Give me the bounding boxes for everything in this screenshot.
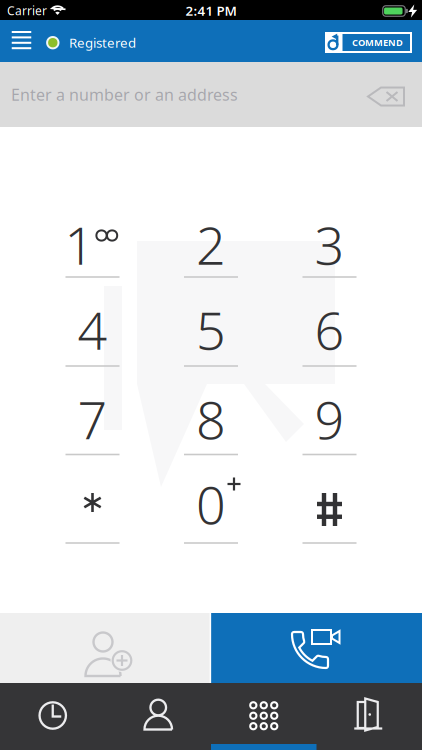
button[interactable]: 3 — [277, 202, 381, 286]
button[interactable]: 6 — [277, 287, 381, 371]
button[interactable]: Menu — [9, 27, 33, 55]
button[interactable]: Enter a number or an address — [0, 62, 422, 127]
staticText: COMMEND — [352, 36, 403, 49]
button[interactable]: Dial pad — [234, 689, 294, 741]
button[interactable]: Contacts — [128, 689, 188, 741]
button[interactable]: 1 — [40, 202, 144, 286]
button[interactable]: 8 — [159, 377, 263, 461]
staticText: 0 — [196, 469, 226, 539]
button[interactable]: 0 — [159, 462, 263, 546]
staticText: 7 — [77, 384, 107, 454]
staticText: 1 — [64, 210, 94, 279]
staticText: 8 — [196, 384, 226, 454]
staticText: 6 — [314, 295, 344, 364]
staticText: Carrier — [7, 2, 47, 18]
button[interactable]: Delete — [357, 76, 415, 116]
staticText: 2 — [196, 210, 226, 279]
staticText: 3 — [314, 210, 344, 279]
staticText: Registered — [69, 34, 136, 51]
button[interactable]: 7 — [40, 377, 144, 461]
button[interactable]: 9 — [277, 377, 381, 461]
button[interactable]: 5 — [159, 287, 263, 371]
button[interactable]: 4 — [40, 287, 144, 371]
button[interactable]: Pound — [277, 462, 381, 546]
button[interactable]: Video call — [210, 613, 422, 683]
staticText: 4 — [77, 295, 107, 364]
staticText: Enter a number or an address — [11, 84, 238, 105]
button[interactable]: Recents — [23, 689, 83, 741]
staticText: 9 — [314, 384, 344, 454]
button[interactable]: Door opener — [339, 689, 399, 741]
button[interactable]: Star — [40, 462, 144, 546]
button[interactable]: 2 — [159, 202, 263, 286]
staticText: 2:41 PM — [185, 2, 236, 19]
staticText: 5 — [196, 295, 226, 364]
button[interactable]: Add contact — [0, 613, 210, 683]
